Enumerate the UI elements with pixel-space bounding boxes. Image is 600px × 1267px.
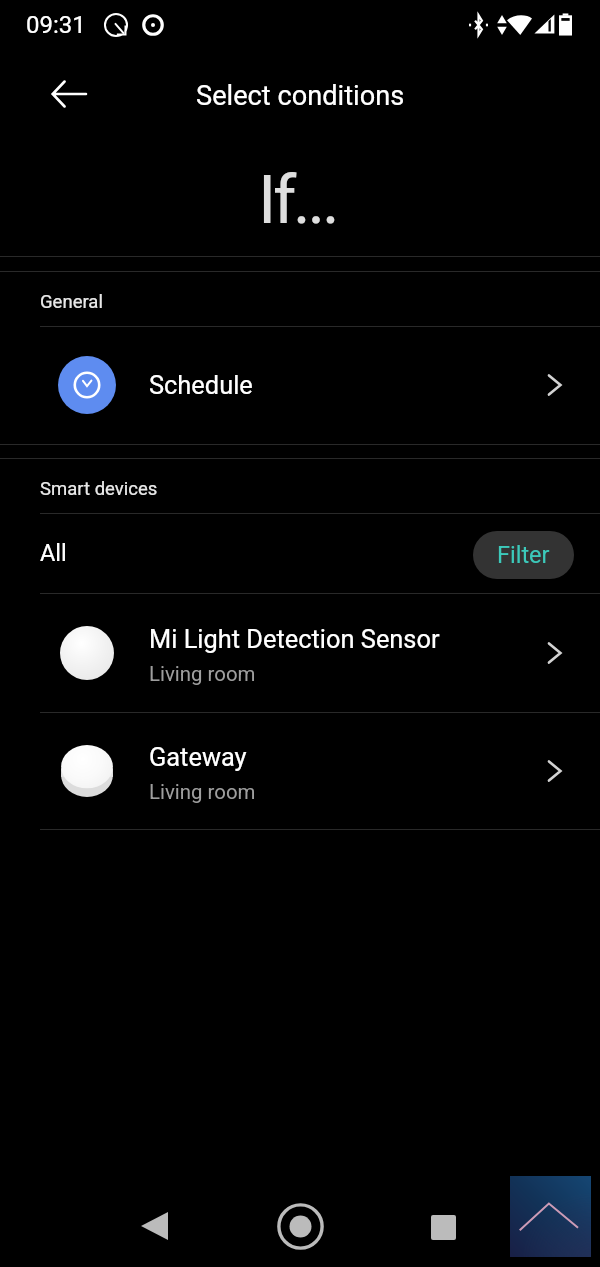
staticText: All — [40, 539, 67, 567]
staticText: Gateway — [149, 742, 247, 772]
button[interactable]: Gateway — [0, 713, 600, 828]
staticText: Schedule — [149, 370, 253, 400]
button[interactable]: Recents — [413, 1197, 473, 1257]
button[interactable]: Mi Light Detection Sensor — [0, 594, 600, 711]
staticText: 09:31 — [26, 11, 86, 39]
button[interactable]: Back — [44, 69, 94, 119]
staticText: 4 — [526, 23, 533, 37]
staticText: If... — [258, 161, 337, 240]
staticText: Living room — [149, 780, 256, 804]
staticText: Living room — [149, 662, 256, 686]
button[interactable]: Schedule — [0, 327, 600, 443]
staticText: Filter — [497, 541, 550, 569]
staticText: Select conditions — [196, 80, 405, 112]
button[interactable]: Home — [270, 1196, 330, 1256]
staticText: Smart devices — [40, 478, 158, 500]
button[interactable]: Back — [124, 1196, 184, 1256]
staticText: General — [40, 291, 103, 313]
staticText: Mi Light Detection Sensor — [149, 624, 440, 654]
button[interactable]: Recent app — [510, 1176, 591, 1257]
button[interactable]: Filter — [473, 531, 574, 579]
